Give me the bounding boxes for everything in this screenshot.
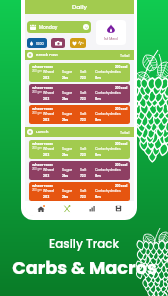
staticText: Carbohydrates: [95, 167, 121, 172]
staticText: Wheat: [43, 111, 55, 116]
staticText: 8m: [95, 194, 101, 199]
staticText: Salt: [80, 167, 87, 172]
staticText: 2bs: [62, 173, 69, 178]
staticText: Carbohydrates: [95, 69, 121, 74]
staticText: 2bs: [62, 75, 69, 80]
staticText: 2bs: [62, 152, 69, 157]
staticText: 203: [43, 96, 50, 101]
staticText: Carbohydrates: [95, 90, 121, 95]
staticText: Break Fast: [36, 52, 58, 58]
staticText: 200 gm: [32, 90, 42, 94]
staticText: 203: [43, 194, 50, 199]
staticText: 203: [43, 173, 50, 178]
button[interactable]: Stats: [83, 201, 101, 216]
staticText: Salt: [80, 111, 87, 116]
staticText: 723: [80, 194, 86, 199]
button[interactable]: Heart rate: [70, 38, 86, 48]
staticText: Wheat Toast: [32, 184, 53, 188]
staticText: 200 gm: [32, 167, 42, 171]
staticText: Carbohydrates: [95, 188, 121, 193]
button[interactable]: Wheat Toast: [29, 84, 130, 103]
staticText: Daily: [72, 3, 87, 11]
button[interactable]: Wheat Toast: [29, 105, 130, 124]
staticText: Sugar: [62, 69, 73, 74]
staticText: Wheat Toast: [32, 65, 53, 69]
staticText: 723: [80, 96, 86, 101]
staticText: 723: [80, 117, 86, 122]
staticText: Carbohydrates: [95, 111, 121, 116]
staticText: Easily Track: [49, 236, 119, 253]
staticText: Wheat: [43, 167, 55, 172]
staticText: 200 Kcal: [115, 107, 128, 111]
staticText: 200 Kcal: [115, 86, 128, 90]
button[interactable]: Wheat Toast: [29, 140, 130, 159]
staticText: 200 gm: [32, 111, 42, 115]
button[interactable]: Home: [32, 201, 50, 216]
staticText: Sugar: [62, 188, 73, 193]
staticText: 203: [43, 75, 50, 80]
button[interactable]: Wheat Toast: [29, 161, 130, 180]
button[interactable]: Wheat Toast: [29, 63, 130, 82]
staticText: Sugar: [62, 167, 73, 172]
staticText: Wheat: [43, 90, 55, 95]
staticText: Carbohydrates: [95, 146, 121, 151]
staticText: 200 gm: [32, 69, 42, 73]
staticText: 723: [80, 173, 86, 178]
staticText: 200 gm: [32, 188, 42, 192]
staticText: 8m: [95, 117, 101, 122]
staticText: 723: [80, 152, 86, 157]
staticText: 1000: [36, 41, 44, 46]
staticText: 200 Kcal: [115, 142, 128, 146]
staticText: Total: [120, 130, 130, 135]
staticText: Sugar: [62, 146, 73, 151]
button[interactable]: Meals: [58, 201, 76, 216]
staticText: 2bs: [62, 117, 69, 122]
staticText: 8m: [95, 96, 101, 101]
staticText: Wheat Toast: [32, 142, 53, 146]
staticText: 203: [43, 152, 50, 157]
staticText: Wheat: [43, 146, 55, 151]
staticText: Monday: [39, 24, 58, 30]
staticText: 2bs: [62, 194, 69, 199]
staticText: Wheat Toast: [32, 86, 53, 90]
staticText: Sugar: [62, 90, 73, 95]
button[interactable]: Monday: [27, 21, 91, 33]
staticText: Carbs & Macros: [12, 255, 157, 280]
staticText: 1st Meal: [104, 36, 118, 41]
staticText: Wheat Toast: [32, 163, 53, 167]
staticText: 200 Kcal: [115, 65, 128, 69]
button[interactable]: 1000: [27, 38, 47, 48]
staticText: Wheat: [43, 188, 55, 193]
staticText: 8m: [95, 152, 101, 157]
staticText: 200 Kcal: [115, 184, 128, 188]
button[interactable]: 1st Meal: [96, 20, 126, 45]
button[interactable]: Diary: [109, 201, 127, 216]
button[interactable]: Break Fast: [25, 50, 134, 60]
staticText: Wheat: [43, 69, 55, 74]
staticText: 723: [80, 75, 86, 80]
button[interactable]: Add photo: [51, 38, 65, 48]
staticText: 200 gm: [32, 146, 42, 150]
staticText: 203: [43, 117, 50, 122]
staticText: Salt: [80, 90, 87, 95]
staticText: 8m: [95, 173, 101, 178]
staticText: Wheat Toast: [32, 107, 53, 111]
staticText: Salt: [80, 146, 87, 151]
staticText: Salt: [80, 188, 87, 193]
staticText: Total: [120, 53, 130, 58]
button[interactable]: Wheat Toast: [29, 182, 130, 201]
staticText: Lunch: [36, 129, 49, 135]
staticText: Sugar: [62, 111, 73, 116]
staticText: 8m: [95, 75, 101, 80]
button[interactable]: Lunch: [25, 127, 134, 137]
staticText: 2bs: [62, 96, 69, 101]
staticText: 200 Kcal: [115, 163, 128, 167]
staticText: Salt: [80, 69, 87, 74]
